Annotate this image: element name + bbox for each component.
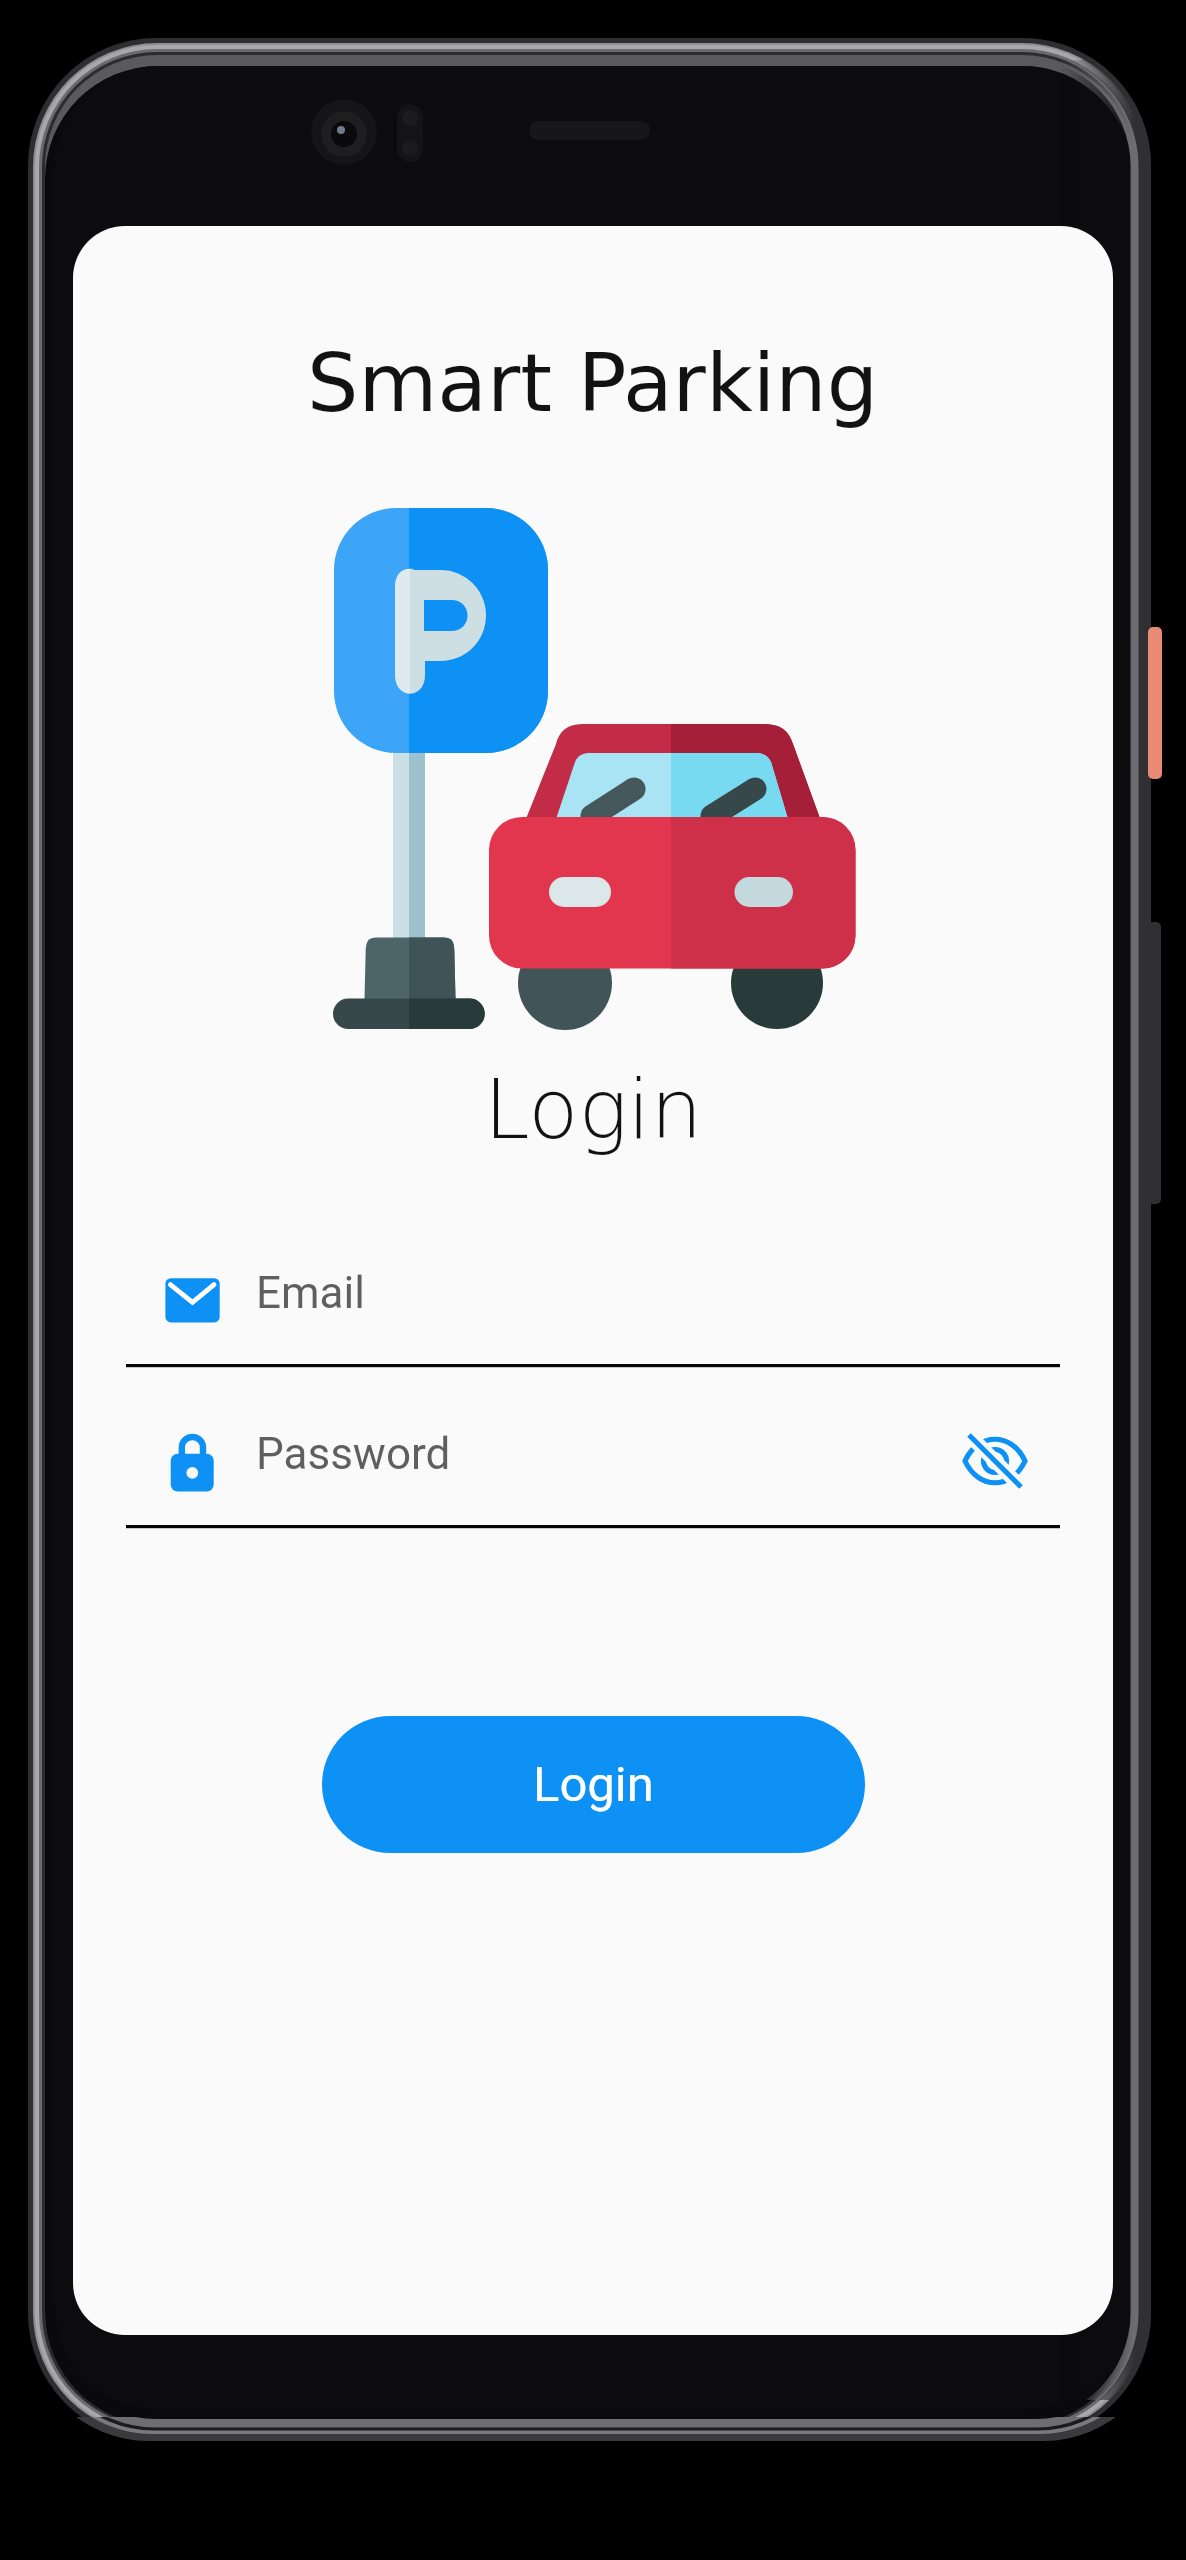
staticText: Email xyxy=(256,1267,365,1319)
button[interactable]: Login xyxy=(322,1716,865,1853)
staticText: Password xyxy=(256,1428,451,1480)
button[interactable]: Password xyxy=(126,1405,1060,1552)
button[interactable]: Email xyxy=(126,1244,1060,1391)
staticText: Login xyxy=(484,1062,703,1157)
staticText: Login xyxy=(533,1756,654,1813)
button[interactable]: Show password xyxy=(943,1409,1047,1513)
staticText: Smart Parking xyxy=(307,336,879,430)
